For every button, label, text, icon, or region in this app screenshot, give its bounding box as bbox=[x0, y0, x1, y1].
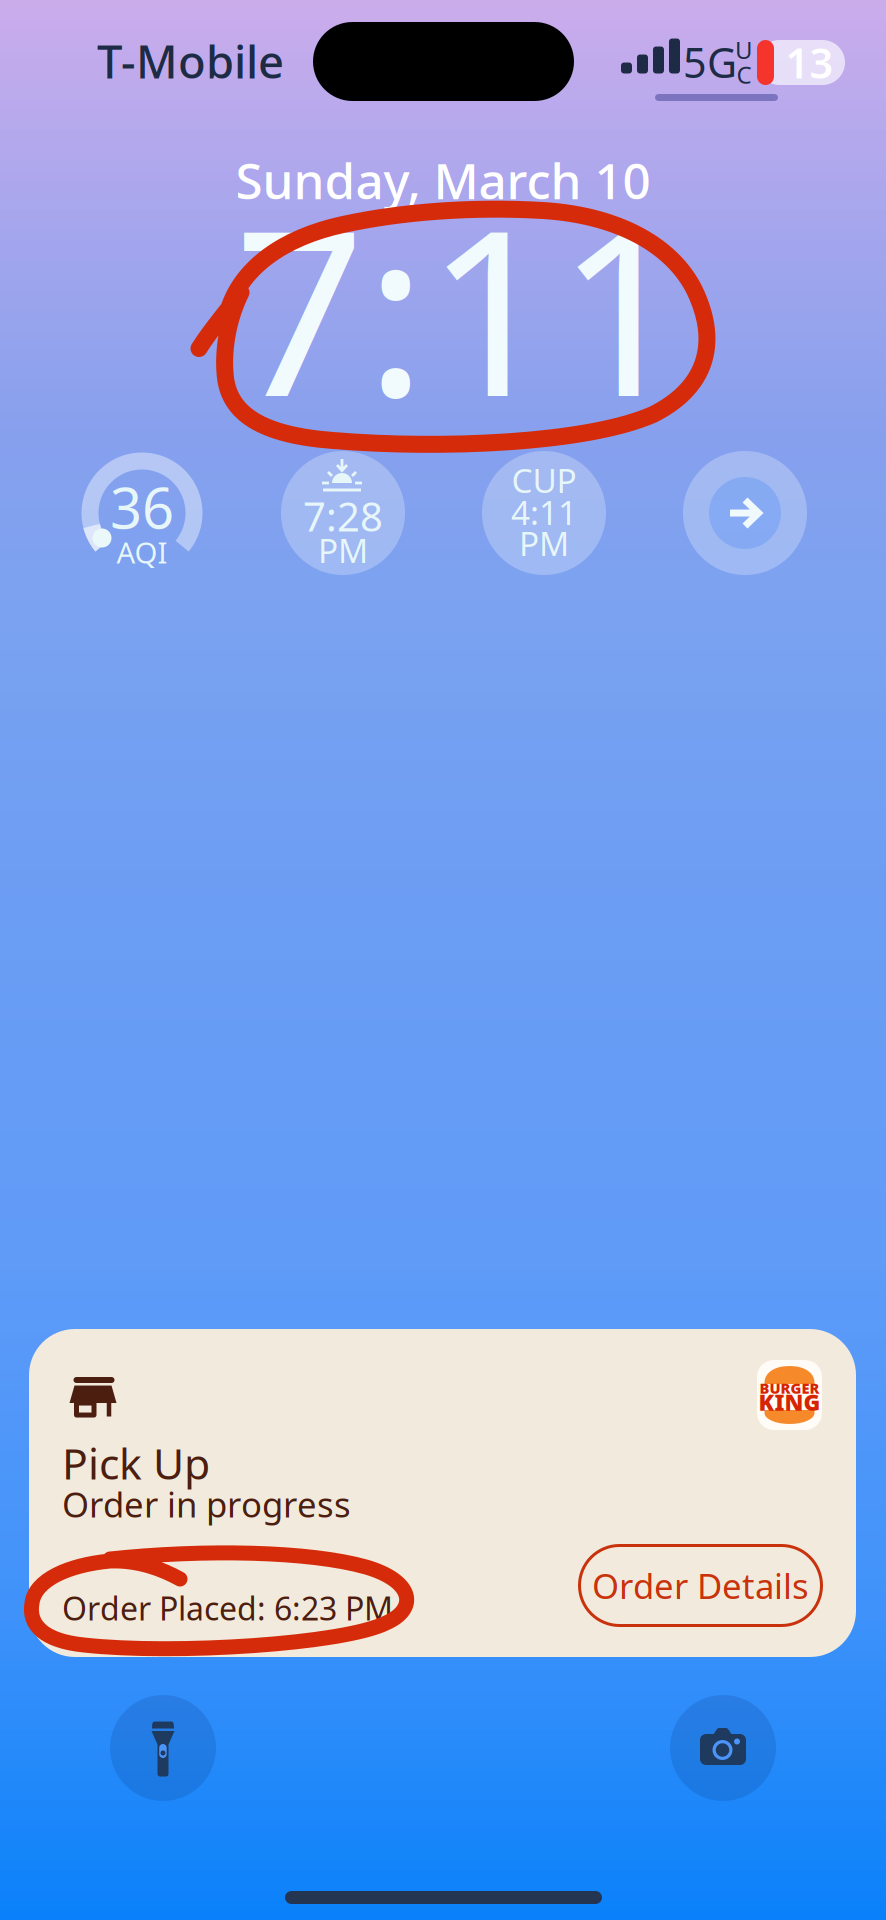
staticText: 4:11 bbox=[511, 490, 577, 534]
button[interactable]: Cupertino 4:11 PM bbox=[482, 451, 606, 575]
staticText: PM bbox=[519, 521, 569, 565]
staticText: Pick Up bbox=[62, 1435, 210, 1491]
staticText: Order Placed: 6:23 PM bbox=[62, 1587, 393, 1629]
button[interactable]: Flashlight bbox=[110, 1695, 216, 1801]
staticText: T-Mobile bbox=[97, 31, 284, 91]
staticText: C bbox=[736, 58, 751, 90]
button[interactable]: Air quality 36 bbox=[80, 451, 204, 575]
staticText: 13 bbox=[785, 35, 833, 90]
staticText: Order Details bbox=[592, 1562, 809, 1608]
staticText: PM bbox=[318, 528, 368, 572]
button[interactable]: Camera bbox=[670, 1695, 776, 1801]
staticText: 5G bbox=[683, 35, 737, 89]
staticText: BURGER bbox=[759, 1378, 819, 1398]
staticText: 36 bbox=[110, 470, 174, 544]
button[interactable]: Order Details bbox=[578, 1544, 823, 1627]
staticText: U bbox=[735, 34, 753, 65]
staticText: KING bbox=[758, 1387, 820, 1417]
staticText: 7:11 bbox=[234, 155, 688, 459]
staticText: Sunday, March 10 bbox=[235, 147, 650, 213]
staticText: CUP bbox=[511, 458, 576, 502]
staticText: Order in progress bbox=[62, 1481, 351, 1527]
button[interactable]: Sunset 7:28 PM bbox=[281, 451, 405, 575]
staticText: AQI bbox=[116, 532, 167, 571]
button[interactable]: Next widget page bbox=[683, 451, 807, 575]
staticText: 7:28 bbox=[303, 489, 383, 542]
